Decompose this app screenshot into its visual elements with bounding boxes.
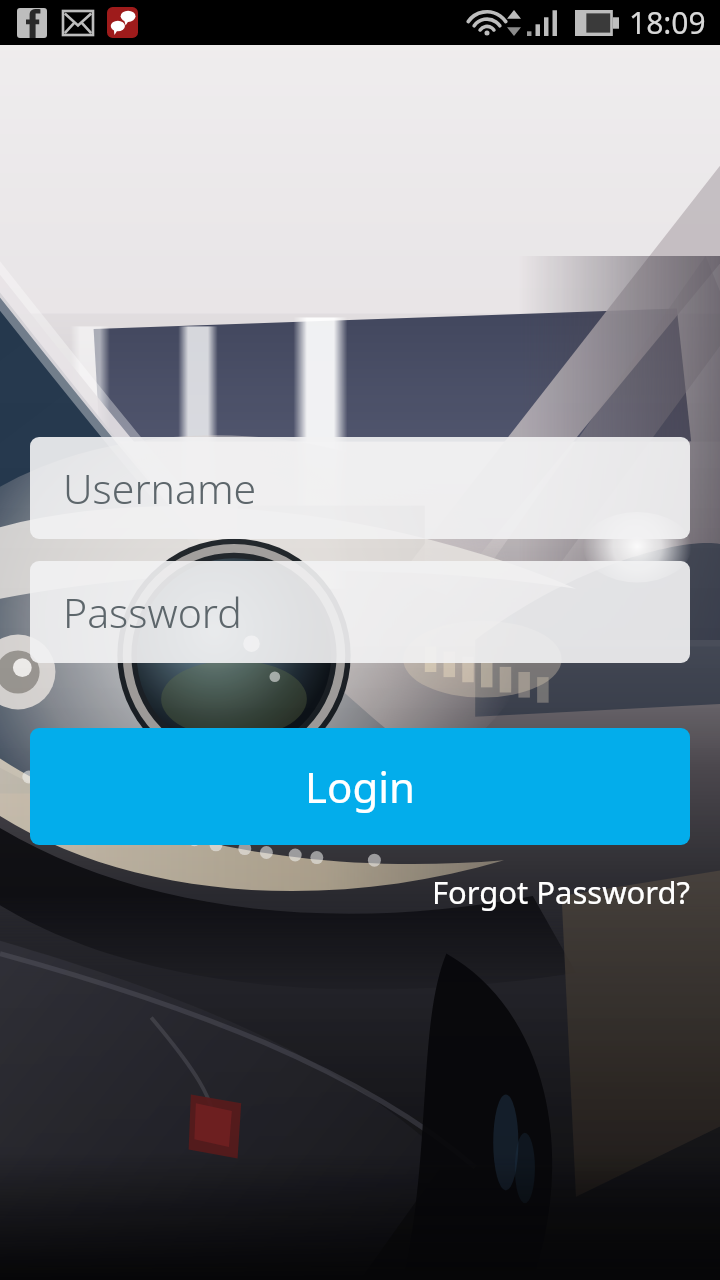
button[interactable]: Username [30, 437, 690, 539]
button[interactable]: Login [30, 728, 690, 845]
staticText: Forgot Password? [431, 871, 690, 913]
staticText: Username [63, 460, 257, 516]
button[interactable]: Forgot Password? [401, 865, 720, 919]
staticText: 18:09 [629, 2, 706, 43]
staticText: Password [63, 584, 242, 640]
staticText: Login [305, 758, 416, 815]
button[interactable]: Password [30, 561, 690, 663]
